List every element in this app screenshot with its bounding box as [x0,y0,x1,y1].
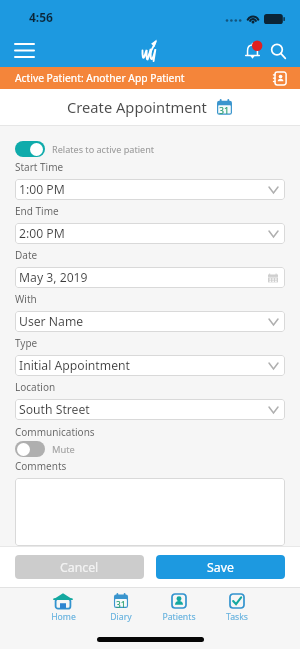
staticText: Communications [15,425,95,439]
staticText: South Street [19,401,90,418]
button[interactable]: Home [34,588,92,623]
staticText: May 3, 2019 [19,269,88,286]
button[interactable]: 2:00 PM [15,223,285,244]
button[interactable]: Patients [150,588,208,623]
button[interactable]: User Name [15,311,285,332]
staticText: 31 [116,599,126,610]
button[interactable] [15,478,285,546]
staticText: With [15,292,37,306]
button[interactable]: Tasks [208,588,266,623]
button[interactable]: Initial Appointment [15,355,285,376]
staticText: Comments [15,459,67,473]
button[interactable]: Cancel [15,555,144,579]
staticText: Tasks [226,611,248,623]
button[interactable]: Save [156,555,285,579]
button[interactable]: 31 [92,588,150,623]
button[interactable]: Switch on [15,141,45,157]
staticText: 1:00 PM [19,181,65,198]
staticText: Date [15,248,38,262]
staticText: Type [15,336,38,350]
staticText: Diary [110,611,132,623]
staticText: 4:56 [29,9,53,25]
staticText: Initial Appointment [19,357,130,374]
button[interactable]: South Street [15,399,285,420]
button[interactable]: Switch off [15,441,75,457]
staticText: Mute [52,443,75,456]
staticText: Start Time [15,160,64,174]
button[interactable]: Patient record [270,69,288,87]
staticText: 31 [219,105,230,117]
staticText: Relates to active patient [52,143,155,155]
staticText: 2:00 PM [19,225,65,242]
button[interactable]: May 3, 2019 [15,267,285,288]
staticText: Home [51,611,76,623]
staticText: Cancel [60,559,99,576]
button[interactable]: Notifications [238,37,266,65]
button[interactable]: Switch off [15,441,45,457]
staticText: Create Appointment [67,97,207,117]
button[interactable]: Menu [8,34,40,66]
staticText: Active Patient: Another App Patient [15,71,185,85]
button[interactable]: 1:00 PM [15,179,285,200]
staticText: Patients [162,611,196,623]
staticText: Location [15,380,56,394]
button[interactable]: Active Patient: Another App Patient [0,67,300,89]
button[interactable]: Switch on [15,141,155,157]
staticText: User Name [19,313,84,330]
button[interactable]: Search [264,37,292,65]
staticText: End Time [15,204,59,218]
staticText: Save [207,559,234,576]
